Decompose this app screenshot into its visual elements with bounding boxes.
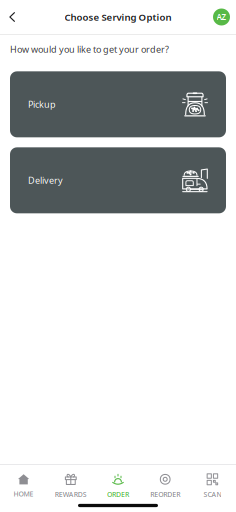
staticText: REWARDS bbox=[55, 490, 87, 499]
button[interactable]: REWARDS bbox=[47, 473, 94, 499]
staticText: REORDER bbox=[150, 490, 180, 499]
button[interactable]: Account bbox=[209, 0, 234, 34]
button[interactable]: SCAN bbox=[189, 473, 236, 499]
button[interactable]: HOME bbox=[0, 473, 47, 499]
button[interactable]: Back bbox=[2, 0, 32, 34]
staticText: Pickup bbox=[28, 98, 56, 110]
button[interactable]: Pickup bbox=[10, 71, 226, 137]
staticText: How would you like to get your order? bbox=[10, 43, 169, 55]
button[interactable]: ORDER bbox=[94, 473, 142, 499]
button[interactable]: REORDER bbox=[142, 473, 189, 499]
button[interactable]: Delivery bbox=[10, 147, 226, 213]
staticText: AZ bbox=[216, 12, 226, 22]
staticText: HOME bbox=[14, 489, 34, 499]
staticText: Choose Serving Option bbox=[64, 10, 171, 24]
staticText: ORDER bbox=[107, 490, 129, 499]
staticText: Delivery bbox=[28, 174, 63, 186]
staticText: SCAN bbox=[203, 490, 221, 499]
